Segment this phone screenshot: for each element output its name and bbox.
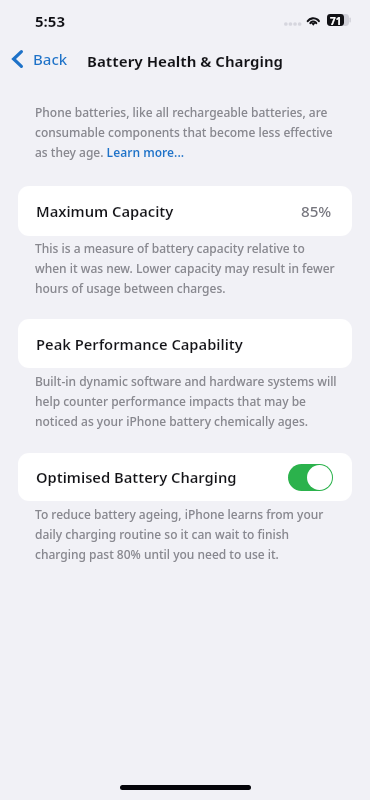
staticText: Battery Health & Charging — [87, 51, 283, 71]
button[interactable]: Back — [8, 46, 72, 72]
staticText: Built-in dynamic software and hardware s… — [35, 370, 337, 430]
staticText: 85% — [301, 201, 332, 222]
staticText: Optimised Battery Charging — [36, 467, 237, 487]
staticText: 71 — [330, 14, 342, 26]
staticText: Phone batteries, like all rechargeable b… — [35, 101, 333, 161]
staticText: To reduce battery ageing, iPhone learns … — [35, 503, 324, 563]
staticText: Back — [33, 49, 68, 69]
staticText: This is a measure of battery capacity re… — [35, 237, 335, 297]
button[interactable]: Peak Performance Capability — [18, 319, 352, 368]
staticText: Maximum Capacity — [36, 201, 174, 221]
staticText: 5:53 — [35, 11, 65, 31]
button[interactable]: Optimised Battery Charging toggle — [288, 464, 333, 491]
button[interactable]: Maximum Capacity — [18, 186, 352, 236]
staticText: Peak Performance Capability — [36, 334, 243, 354]
